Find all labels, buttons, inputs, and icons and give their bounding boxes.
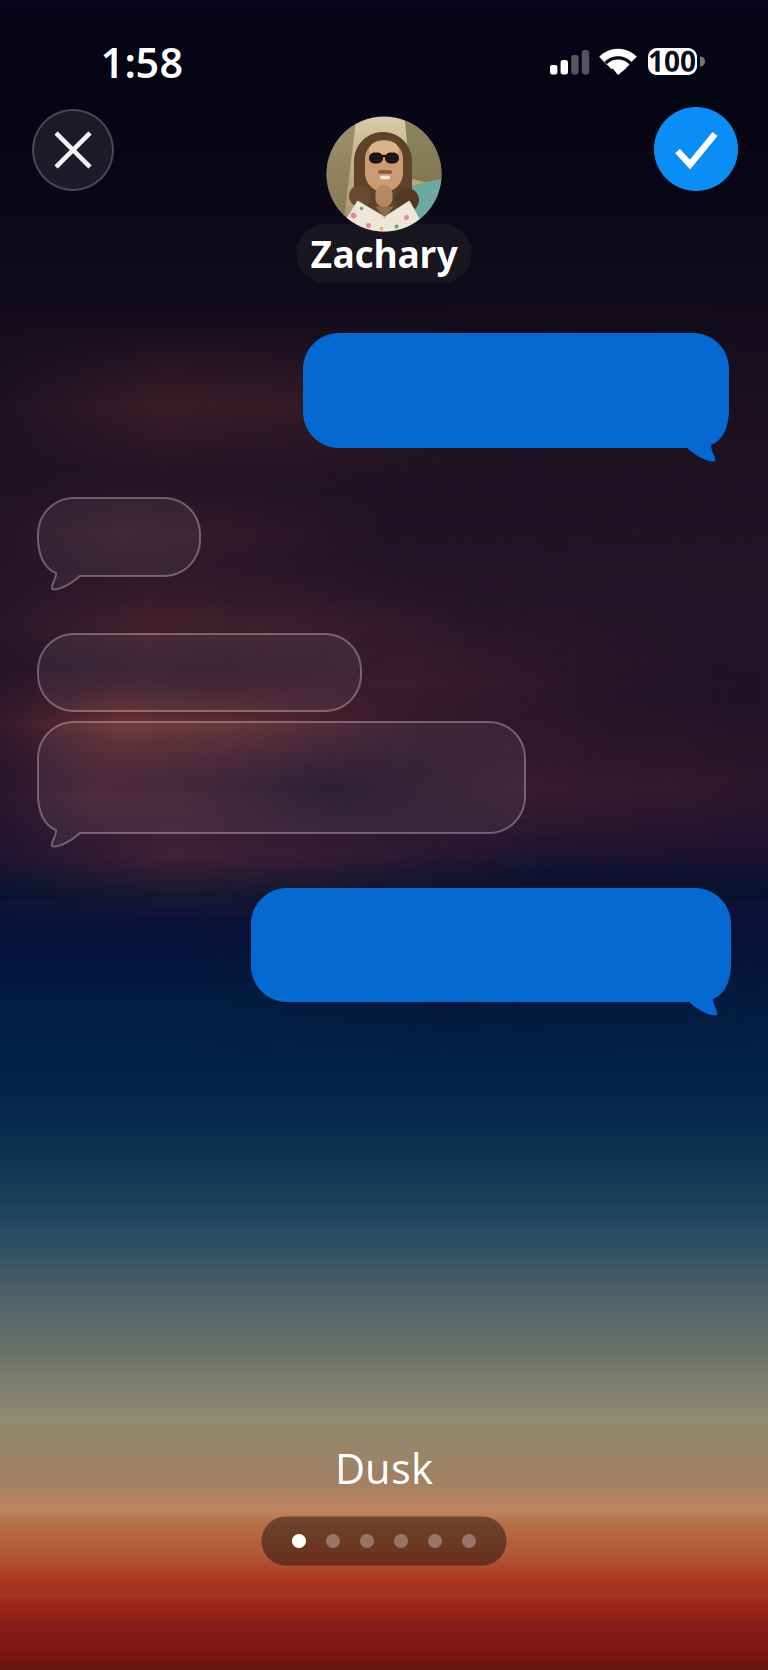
staticText: 100 (648, 42, 696, 80)
staticText: Zachary (310, 229, 457, 278)
staticText: Dusk (335, 1441, 433, 1495)
staticText: 1:58 (100, 35, 183, 89)
button[interactable]: Done (654, 107, 738, 191)
button[interactable]: Close (33, 110, 113, 190)
